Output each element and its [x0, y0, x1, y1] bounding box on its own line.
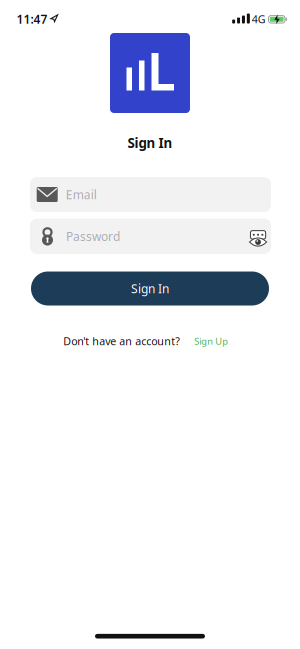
staticText: Sign In — [131, 280, 169, 296]
button[interactable]: Sign In — [31, 271, 269, 305]
staticText: Email — [66, 186, 97, 202]
button[interactable]: Password — [30, 219, 271, 254]
staticText: 4G — [252, 12, 266, 26]
staticText: 11:47 — [16, 11, 47, 27]
button[interactable]: Sign Up — [194, 335, 228, 347]
staticText: Don't have an account? — [63, 334, 180, 348]
staticText: Sign In — [127, 134, 172, 152]
staticText: Sign Up — [194, 335, 228, 347]
staticText: Password — [66, 228, 120, 244]
button[interactable]: Email — [30, 177, 271, 212]
button[interactable]: Show password — [248, 229, 268, 247]
